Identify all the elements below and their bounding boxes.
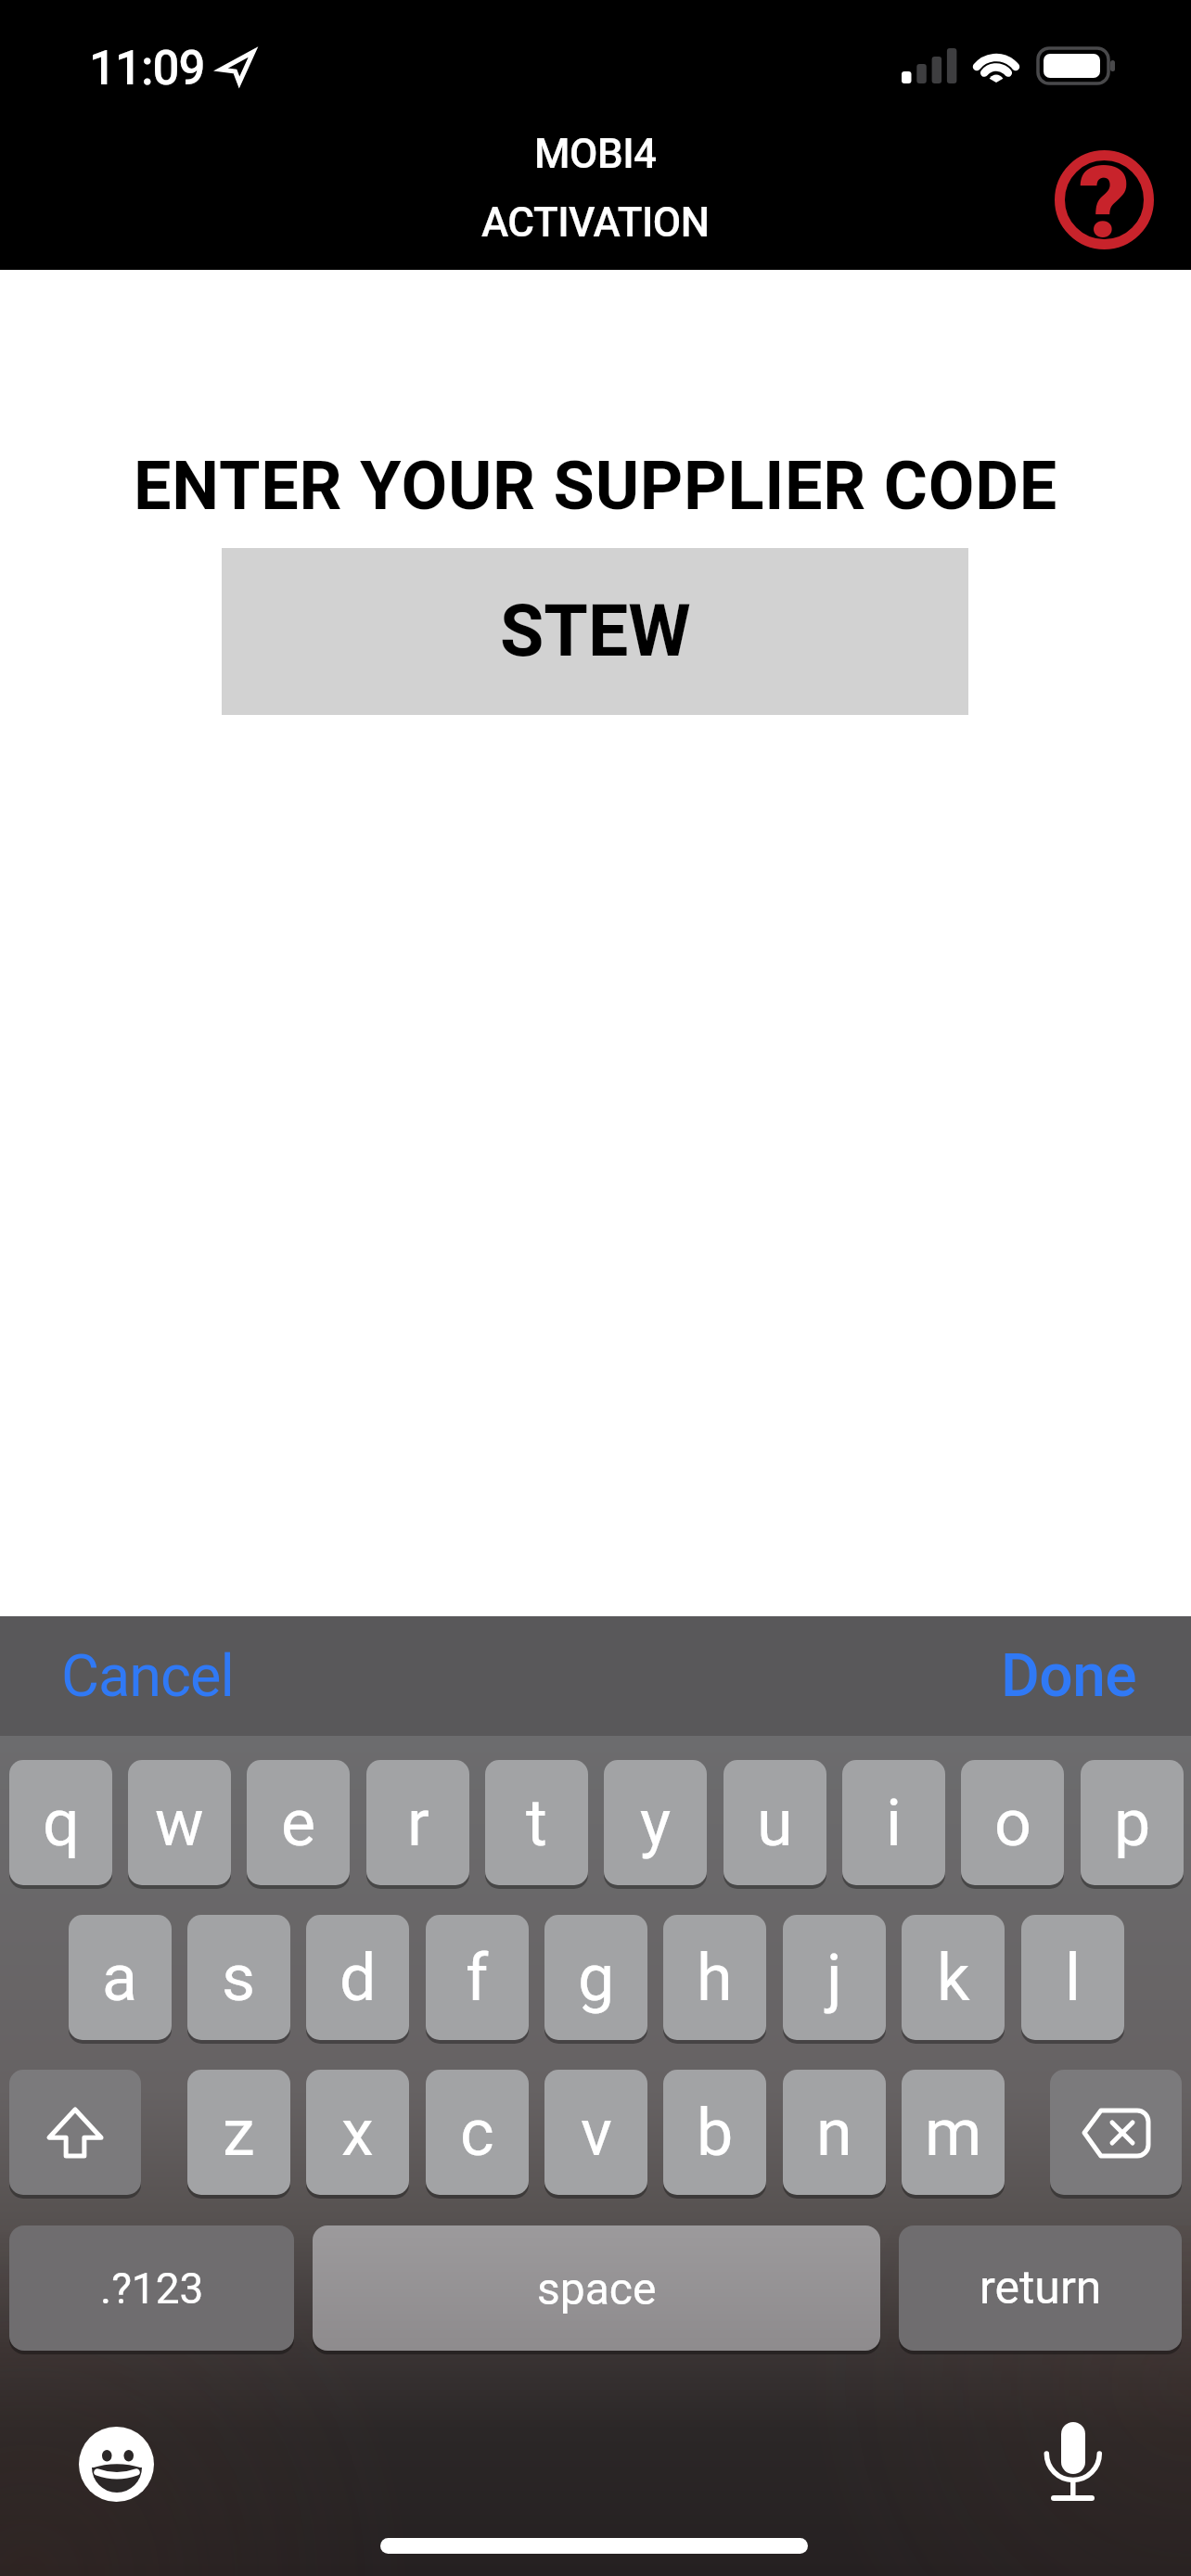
button[interactable]: space [313, 2225, 880, 2351]
staticText: ? [1079, 144, 1131, 256]
staticText: x [341, 2095, 374, 2171]
staticText: f [466, 1940, 489, 2016]
staticText: d [339, 1940, 377, 2016]
button[interactable]: ? [1048, 144, 1160, 256]
button[interactable]: p [1081, 1760, 1184, 1885]
button[interactable]: x [306, 2070, 409, 2195]
staticText: h [697, 1940, 733, 2016]
staticText: .?123 [100, 2264, 204, 2314]
button[interactable]: a [69, 1915, 172, 2040]
staticText: 11:09 [89, 41, 205, 96]
staticText: STEW [500, 590, 691, 673]
button[interactable]: o [961, 1760, 1064, 1885]
staticText: e [281, 1785, 316, 1861]
button[interactable]: b [663, 2070, 766, 2195]
staticText: w [155, 1785, 204, 1861]
staticText: return [980, 2261, 1102, 2315]
staticText: ACTIVATION [481, 198, 710, 247]
staticText: k [937, 1940, 970, 2016]
button[interactable] [79, 2427, 154, 2502]
button[interactable]: g [544, 1915, 647, 2040]
staticText: c [460, 2095, 494, 2171]
button[interactable]: n [783, 2070, 886, 2195]
button[interactable]: r [366, 1760, 469, 1885]
button[interactable] [1050, 2070, 1182, 2195]
staticText: q [43, 1785, 80, 1861]
button[interactable]: m [902, 2070, 1005, 2195]
button[interactable]: f [426, 1915, 529, 2040]
button[interactable]: return [899, 2225, 1182, 2351]
button[interactable]: c [426, 2070, 529, 2195]
button[interactable]: y [604, 1760, 707, 1885]
button[interactable]: l [1021, 1915, 1124, 2040]
staticText: g [578, 1940, 615, 2016]
staticText: ENTER YOUR SUPPLIER CODE [134, 447, 1058, 525]
staticText: b [697, 2095, 734, 2171]
button[interactable]: Cancel [37, 1616, 260, 1736]
button[interactable]: t [485, 1760, 588, 1885]
button[interactable]: s [187, 1915, 290, 2040]
staticText: n [816, 2095, 852, 2171]
staticText: MOBI4 [534, 130, 657, 178]
button[interactable]: k [902, 1915, 1005, 2040]
staticText: z [223, 2095, 255, 2171]
button[interactable]: j [783, 1915, 886, 2040]
staticText: p [1114, 1785, 1151, 1861]
button[interactable] [9, 2070, 141, 2195]
button[interactable]: q [9, 1760, 112, 1885]
button[interactable]: Done [931, 1616, 1154, 1736]
button[interactable]: z [187, 2070, 290, 2195]
staticText: l [1065, 1940, 1082, 2016]
staticText: m [925, 2095, 982, 2171]
staticText: o [994, 1785, 1031, 1861]
button[interactable]: d [306, 1915, 409, 2040]
staticText: v [581, 2095, 612, 2171]
button[interactable]: v [544, 2070, 647, 2195]
staticText: space [537, 2263, 657, 2315]
staticText: y [640, 1785, 672, 1861]
staticText: s [222, 1940, 256, 2016]
button[interactable]: e [247, 1760, 350, 1885]
button[interactable]: i [842, 1760, 945, 1885]
staticText: t [526, 1785, 547, 1861]
staticText: Cancel [61, 1642, 234, 1711]
staticText: j [826, 1940, 842, 2016]
staticText: i [886, 1785, 903, 1861]
button[interactable]: .?123 [9, 2225, 294, 2351]
button[interactable]: STEW [222, 548, 968, 715]
button[interactable]: w [128, 1760, 231, 1885]
button[interactable] [1039, 2416, 1109, 2504]
button[interactable]: u [724, 1760, 826, 1885]
button[interactable]: h [663, 1915, 766, 2040]
staticText: Done [1001, 1641, 1137, 1711]
staticText: u [757, 1785, 793, 1861]
staticText: a [102, 1940, 138, 2016]
staticText: r [407, 1785, 429, 1861]
